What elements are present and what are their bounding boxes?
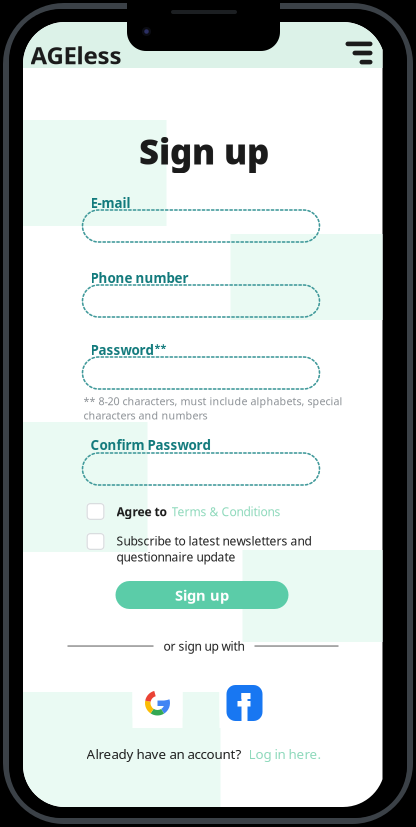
staticText: Terms & Conditions: [171, 503, 280, 519]
button[interactable]: Agree to: [86, 503, 280, 520]
button[interactable]: Log in here.: [248, 745, 321, 763]
button[interactable]: Subscribe to latest newsletters and ques…: [86, 533, 326, 565]
button[interactable]: Menu: [336, 38, 376, 68]
staticText: Phone number: [90, 269, 188, 287]
staticText: Password: [90, 341, 153, 359]
staticText: Subscribe to latest newsletters and ques…: [116, 533, 311, 565]
staticText: or sign up with: [163, 638, 244, 654]
staticText: Already have an account?: [86, 745, 241, 763]
staticText: ** 8-20 characters, must include alphabe…: [83, 394, 342, 422]
button[interactable]: Sign up with Google: [132, 678, 182, 728]
button[interactable]: E-mail: [82, 210, 319, 242]
button[interactable]: Phone number: [82, 285, 319, 317]
staticText: Sign up: [139, 128, 269, 174]
staticText: AGEless: [30, 39, 121, 71]
staticText: Agree to: [116, 503, 167, 519]
button[interactable]: Sign up: [115, 581, 288, 609]
staticText: E-mail: [90, 194, 130, 212]
staticText: Log in here.: [248, 745, 321, 763]
staticText: Sign up: [175, 585, 229, 605]
button[interactable]: Password: [82, 357, 319, 389]
button[interactable]: Confirm password: [82, 453, 319, 485]
staticText: **: [154, 341, 166, 355]
staticText: Confirm Password: [90, 436, 210, 454]
button[interactable]: Sign up with Facebook: [219, 678, 269, 728]
